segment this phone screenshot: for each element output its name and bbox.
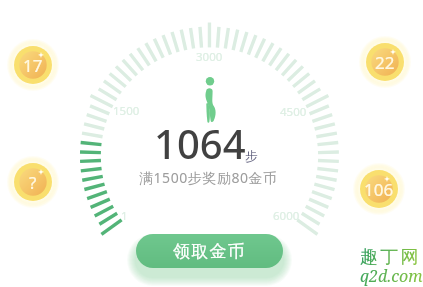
button[interactable]: Coin 22 — [357, 34, 413, 90]
staticText: 22 — [375, 51, 395, 74]
staticText: 1500 — [113, 103, 140, 119]
button[interactable]: Coin 106 — [351, 161, 407, 217]
staticText: 满1500步奖励80金币 — [139, 168, 278, 187]
button[interactable]: Coin ? — [5, 154, 61, 210]
staticText: 6000 — [273, 208, 300, 224]
staticText: 17 — [23, 54, 43, 77]
staticText: 4500 — [280, 104, 307, 120]
button[interactable]: 领取金币 — [136, 234, 283, 268]
staticText: q2d.com — [360, 265, 423, 287]
staticText: 步 — [245, 148, 258, 164]
staticText: 1064 — [154, 116, 246, 170]
staticText: 3000 — [196, 49, 223, 65]
button[interactable]: Coin 17 — [5, 37, 61, 93]
staticText: 趣丁网 — [360, 246, 421, 269]
staticText: 领取金币 — [173, 241, 246, 262]
staticText: 1 — [121, 208, 128, 224]
staticText: ? — [29, 171, 37, 194]
staticText: 106 — [364, 178, 394, 201]
